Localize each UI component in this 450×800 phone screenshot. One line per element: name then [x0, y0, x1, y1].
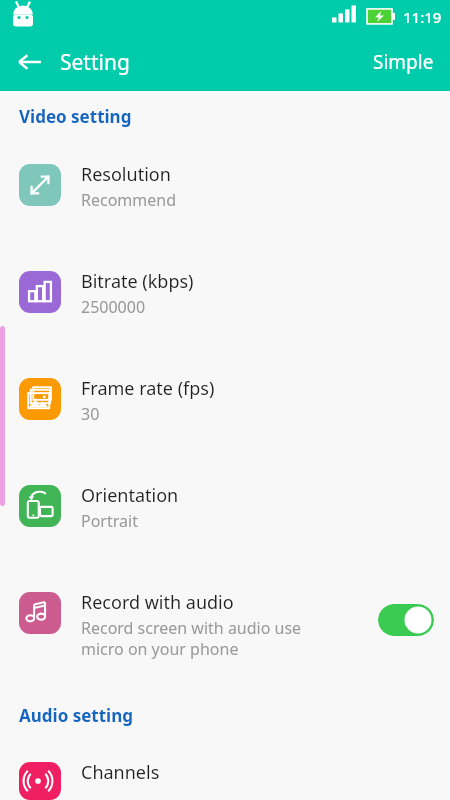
staticText: Channels: [81, 760, 160, 785]
staticText: Setting: [60, 48, 130, 77]
button[interactable]: Orientation: [0, 483, 450, 532]
button[interactable]: Bitrate (kbps): [0, 269, 450, 318]
staticText: Video setting: [19, 105, 132, 128]
staticText: Frame rate (fps): [81, 376, 215, 401]
staticText: Resolution: [81, 162, 171, 187]
staticText: Portrait: [81, 510, 138, 532]
button[interactable]: Resolution: [0, 162, 450, 211]
staticText: Record with audio: [81, 590, 234, 615]
staticText: 30: [81, 403, 100, 425]
button[interactable]: Simple: [357, 33, 450, 91]
staticText: Recommend: [81, 189, 177, 211]
staticText: Simple: [373, 49, 434, 75]
button[interactable]: Back: [6, 38, 54, 86]
button[interactable]: Record with audio: [0, 590, 450, 660]
button[interactable]: Channels: [0, 760, 450, 800]
staticText: 11:19: [403, 7, 442, 27]
staticText: Bitrate (kbps): [81, 269, 194, 294]
button[interactable]: Frame rate (fps): [0, 376, 450, 425]
staticText: 2500000: [81, 296, 146, 318]
staticText: Orientation: [81, 483, 179, 508]
staticText: Audio setting: [19, 704, 134, 727]
button[interactable]: Record with audio toggle: [378, 604, 434, 636]
staticText: Record screen with audio use micro on yo…: [81, 617, 302, 660]
